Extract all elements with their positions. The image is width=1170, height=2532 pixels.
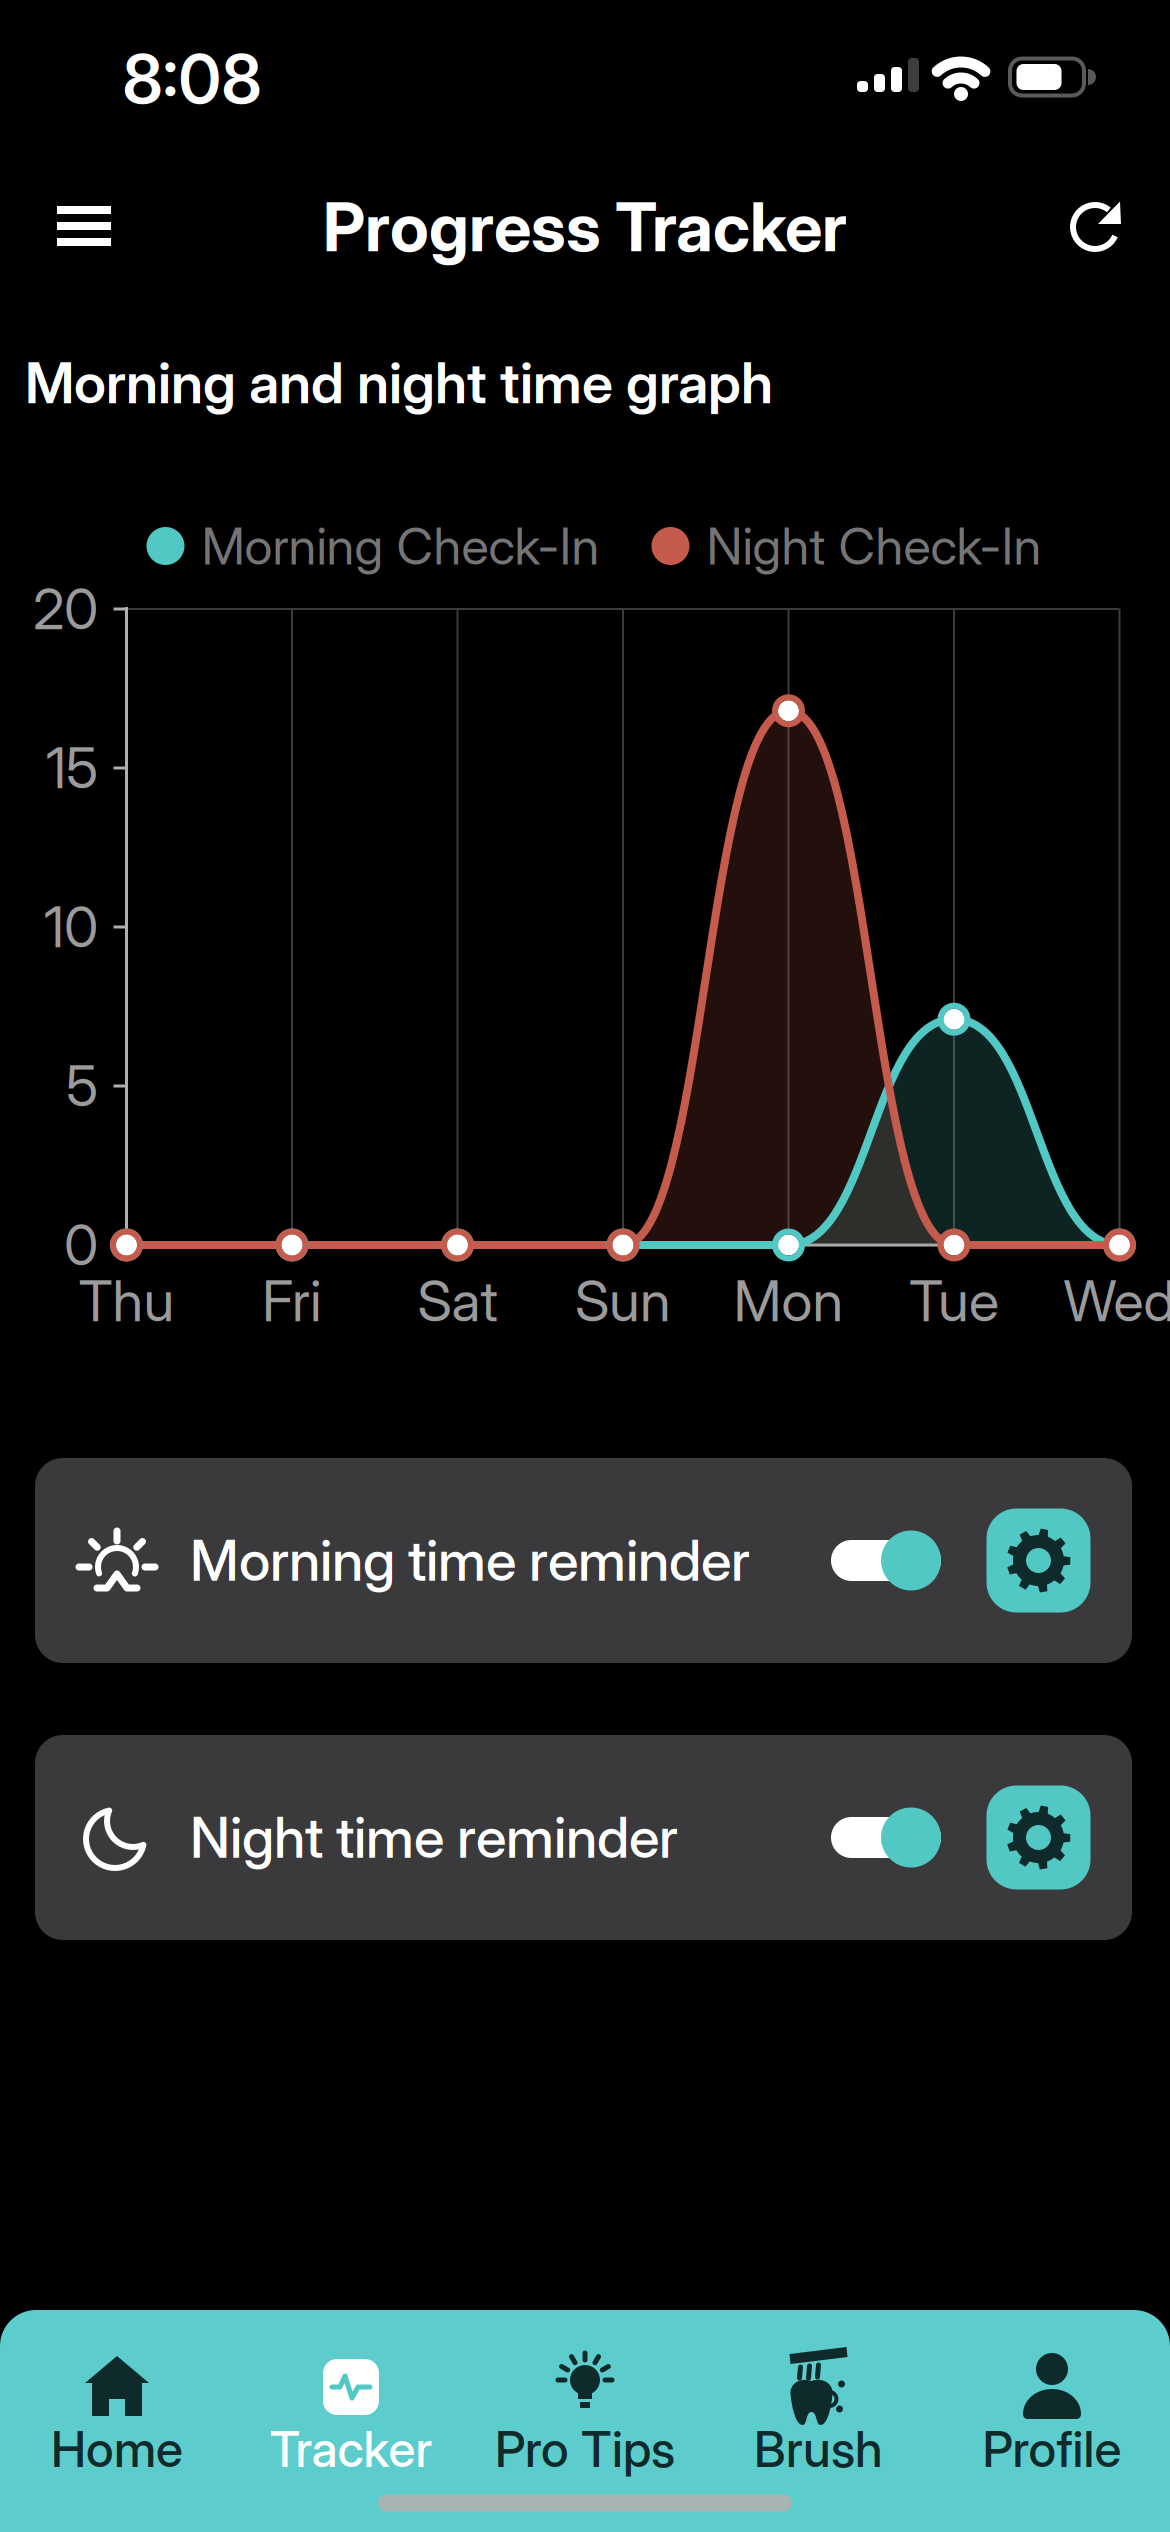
button[interactable]: Night time reminder on [831, 1807, 941, 1867]
button[interactable]: Pro Tips [468, 2310, 702, 2490]
staticText: Tue [909, 1267, 999, 1335]
staticText: Home [51, 2419, 183, 2479]
button[interactable]: Morning time reminder settings [986, 1508, 1090, 1612]
staticText: 0 [64, 1211, 98, 1279]
button[interactable]: Morning time reminder on [831, 1530, 941, 1590]
button[interactable]: Profile [935, 2310, 1169, 2490]
button[interactable]: Home [0, 2310, 234, 2490]
staticText: 10 [44, 893, 98, 961]
staticText: 5 [66, 1052, 98, 1120]
button[interactable]: Menu [57, 206, 111, 246]
staticText: Tracker [269, 2419, 432, 2479]
staticText: Night time reminder [190, 1804, 678, 1871]
staticText: 8:08 [122, 39, 261, 119]
staticText: Brush [754, 2419, 883, 2479]
button[interactable]: Night time reminder settings [986, 1785, 1090, 1889]
button[interactable]: Refresh [1065, 194, 1129, 254]
staticText: Wed [1063, 1267, 1170, 1335]
staticText: Sun [575, 1267, 671, 1335]
staticText: 15 [46, 734, 98, 802]
staticText: Pro Tips [495, 2419, 675, 2479]
staticText: Thu [78, 1267, 174, 1335]
staticText: Morning time reminder [190, 1527, 750, 1594]
staticText: 20 [33, 575, 98, 643]
staticText: Morning Check-In [201, 515, 599, 577]
button[interactable]: Tracker [234, 2310, 468, 2490]
button[interactable]: Brush [701, 2310, 935, 2490]
staticText: Profile [982, 2419, 1121, 2479]
staticText: Morning and night time graph [25, 349, 773, 417]
staticText: Progress Tracker [323, 187, 847, 267]
staticText: Mon [733, 1267, 843, 1335]
staticText: Sat [417, 1267, 497, 1335]
staticText: Fri [262, 1267, 322, 1335]
staticText: Night Check-In [706, 515, 1041, 577]
